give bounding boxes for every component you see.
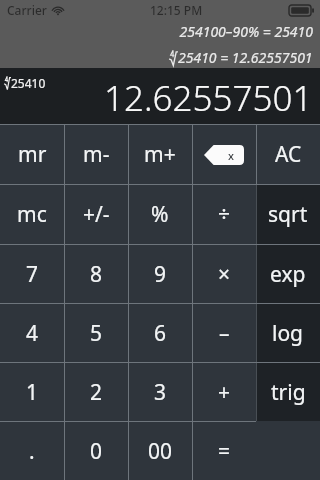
button[interactable]: 00 bbox=[128, 422, 192, 480]
button[interactable]: 6 bbox=[128, 304, 192, 362]
button[interactable]: 5 bbox=[64, 304, 128, 362]
staticText: 6 bbox=[154, 319, 167, 348]
staticText: m- bbox=[83, 140, 110, 169]
staticText: x bbox=[228, 148, 234, 163]
staticText: 3 bbox=[154, 378, 167, 407]
staticText: exp bbox=[270, 260, 306, 289]
button[interactable]: trig bbox=[256, 363, 320, 421]
staticText: 1 bbox=[26, 378, 39, 407]
staticText: = bbox=[218, 437, 231, 466]
staticText: 0 bbox=[90, 437, 103, 466]
staticText: 00 bbox=[148, 437, 173, 466]
button[interactable]: 4 bbox=[0, 304, 64, 362]
staticText: m+ bbox=[144, 140, 176, 169]
button[interactable]: m- bbox=[64, 125, 128, 184]
staticText: + bbox=[218, 378, 231, 407]
button[interactable]: log bbox=[256, 304, 320, 362]
staticText: +/- bbox=[83, 200, 110, 229]
staticText: 12:15 PM bbox=[150, 2, 203, 18]
staticText: mc bbox=[17, 200, 47, 229]
button[interactable]: 3 bbox=[128, 363, 192, 421]
button[interactable]: % bbox=[128, 185, 192, 244]
button[interactable]: mc bbox=[0, 185, 64, 244]
staticText: × bbox=[218, 260, 231, 289]
button[interactable]: 2 bbox=[64, 363, 128, 421]
staticText: 8 bbox=[90, 260, 103, 289]
button[interactable]: AC bbox=[256, 125, 320, 184]
staticText: AC bbox=[275, 140, 302, 169]
button[interactable]: 8 bbox=[64, 245, 128, 303]
button[interactable]: 7 bbox=[0, 245, 64, 303]
staticText: ÷ bbox=[218, 200, 231, 229]
staticText: 5 bbox=[90, 319, 103, 348]
staticText: Carrier bbox=[7, 2, 47, 18]
button[interactable]: 0 bbox=[64, 422, 128, 480]
staticText: 25410 bbox=[11, 75, 46, 91]
staticText: sqrt bbox=[268, 200, 308, 229]
button[interactable]: × bbox=[192, 245, 256, 303]
staticText: 2 bbox=[90, 378, 103, 407]
staticText: 4 bbox=[26, 319, 39, 348]
staticText: 9 bbox=[154, 260, 167, 289]
button[interactable]: = bbox=[192, 422, 256, 480]
button[interactable]: ÷ bbox=[192, 185, 256, 244]
staticText: log bbox=[272, 319, 304, 348]
button[interactable]: Backspace bbox=[192, 125, 256, 184]
staticText: 254100–90% = 25410 bbox=[179, 22, 313, 41]
staticText: 7 bbox=[26, 260, 39, 289]
button[interactable]: mr bbox=[0, 125, 64, 184]
button[interactable]: + bbox=[192, 363, 256, 421]
button[interactable]: 9 bbox=[128, 245, 192, 303]
button[interactable]: 1 bbox=[0, 363, 64, 421]
staticText: 12.62557501 bbox=[104, 74, 313, 122]
staticText: – bbox=[219, 319, 230, 348]
button[interactable]: +/- bbox=[64, 185, 128, 244]
staticText: % bbox=[151, 200, 169, 229]
staticText: 25410 = 12.62557501 bbox=[178, 48, 313, 67]
button[interactable]: . bbox=[0, 422, 64, 480]
button[interactable]: – bbox=[192, 304, 256, 362]
staticText: trig bbox=[271, 378, 306, 407]
button[interactable]: exp bbox=[256, 245, 320, 303]
button[interactable]: m+ bbox=[128, 125, 192, 184]
staticText: mr bbox=[18, 140, 47, 169]
staticText: . bbox=[29, 437, 35, 466]
button[interactable]: sqrt bbox=[256, 185, 320, 244]
